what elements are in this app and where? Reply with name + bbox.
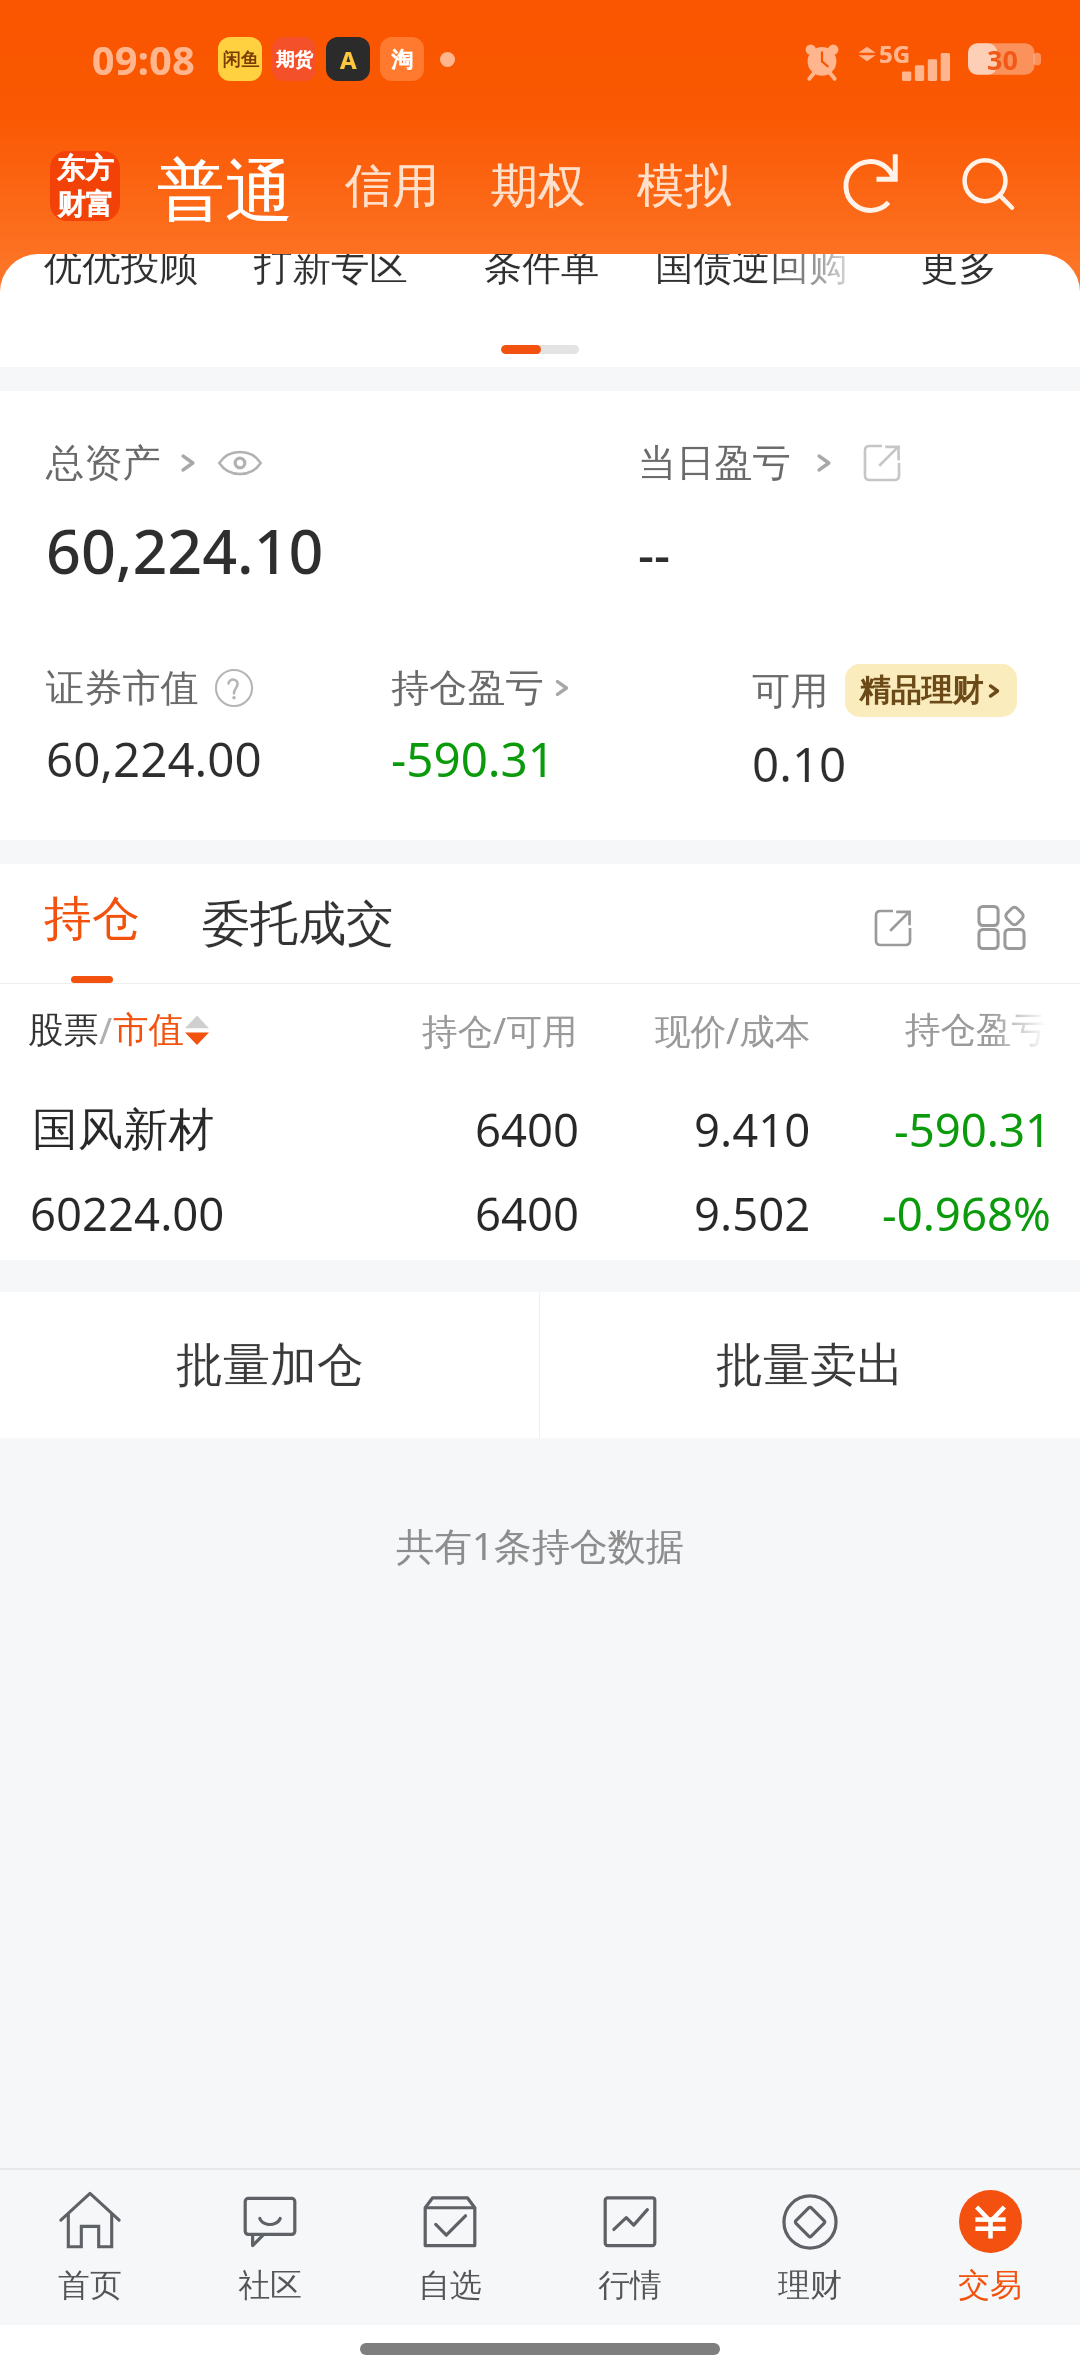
button[interactable]: 期权	[491, 157, 585, 216]
staticText: 闲鱼	[222, 48, 259, 71]
button[interactable]: 交易	[900, 2170, 1080, 2325]
button[interactable]: 社区	[180, 2170, 360, 2325]
button[interactable]: 优优投顾	[44, 254, 198, 292]
button[interactable]: Search	[956, 153, 1022, 219]
button[interactable]: 普通	[157, 150, 293, 222]
button[interactable]: 行情	[540, 2170, 720, 2325]
staticText: 持仓/可用	[422, 1006, 578, 1054]
staticText: 社区	[238, 2265, 302, 2305]
staticText: 持仓盈亏	[391, 664, 544, 712]
staticText: 自选	[418, 2265, 482, 2305]
button[interactable]: 批量加仓	[0, 1292, 539, 1438]
staticText: --	[638, 519, 671, 587]
staticText: 国风新材	[32, 1101, 380, 1158]
staticText: 首页	[58, 2265, 122, 2305]
button[interactable]: East Money	[50, 151, 120, 221]
button[interactable]: 总资产	[46, 439, 263, 487]
staticText: /	[99, 1006, 113, 1054]
button[interactable]: 更多	[920, 254, 997, 292]
staticText: 财富	[57, 187, 114, 221]
staticText: 证券市值	[46, 664, 199, 712]
staticText: 理财	[778, 2265, 842, 2305]
button[interactable]: 批量卖出	[540, 1292, 1080, 1438]
button[interactable]: 自选	[360, 2170, 540, 2325]
button[interactable]: 持仓	[44, 889, 140, 983]
staticText: 行情	[598, 2265, 662, 2305]
button[interactable]: 信用	[345, 157, 439, 216]
button[interactable]: 当日盈亏	[638, 439, 905, 487]
button[interactable]: Refresh	[840, 153, 906, 219]
staticText: 5G	[879, 37, 911, 70]
staticText: 现价/成本	[655, 1006, 811, 1054]
staticText: -590.31	[894, 1098, 1051, 1160]
button[interactable]: 条件单	[484, 254, 600, 292]
staticText: 总资产	[46, 439, 161, 487]
button[interactable]: 模拟	[637, 157, 731, 216]
staticText: 精品理财	[859, 671, 983, 710]
staticText: -0.968%	[882, 1182, 1051, 1244]
button[interactable]: Open externally	[870, 905, 916, 951]
staticText: 期货	[276, 48, 313, 71]
staticText: 股票	[28, 1008, 99, 1053]
staticText: 0.10	[752, 731, 847, 796]
staticText: 9.502	[694, 1182, 811, 1244]
button[interactable]: 精品理财	[845, 664, 1017, 717]
button[interactable]: More tools	[977, 903, 1026, 952]
button[interactable]: 持仓盈亏	[391, 664, 576, 712]
button[interactable]: 打新专区	[254, 254, 408, 292]
staticText: 可用	[752, 667, 829, 715]
staticText: 持仓	[44, 889, 140, 949]
staticText: 批量卖出	[716, 1336, 904, 1395]
staticText: 9.410	[694, 1098, 811, 1160]
staticText: 6400	[475, 1182, 580, 1244]
staticText: 市值	[113, 1008, 184, 1053]
staticText: 批量加仓	[176, 1336, 364, 1395]
staticText: 当日盈亏	[638, 439, 791, 487]
button[interactable]: 首页	[0, 2170, 180, 2325]
staticText: 09:08	[92, 33, 196, 86]
button[interactable]: 证券市值	[46, 664, 255, 712]
staticText: 持仓盈亏	[905, 1008, 1047, 1053]
staticText: 60224.00	[30, 1182, 380, 1244]
staticText: 共有1条持仓数据	[396, 1519, 684, 1571]
button[interactable]: 理财	[720, 2170, 900, 2325]
staticText: 东方	[57, 151, 114, 187]
staticText: -590.31	[391, 726, 555, 791]
staticText: 交易	[958, 2265, 1022, 2305]
staticText: A	[340, 43, 357, 76]
staticText: 60,224.00	[46, 726, 262, 791]
staticText: 淘	[391, 46, 413, 73]
button[interactable]: 国债逆回购	[655, 254, 848, 292]
staticText: 60,224.10	[46, 509, 324, 592]
button[interactable]: 委托成交	[202, 894, 394, 954]
staticText: 30	[987, 41, 1018, 78]
button[interactable]: 国风新材	[0, 1098, 1080, 1244]
staticText: 6400	[475, 1098, 580, 1160]
